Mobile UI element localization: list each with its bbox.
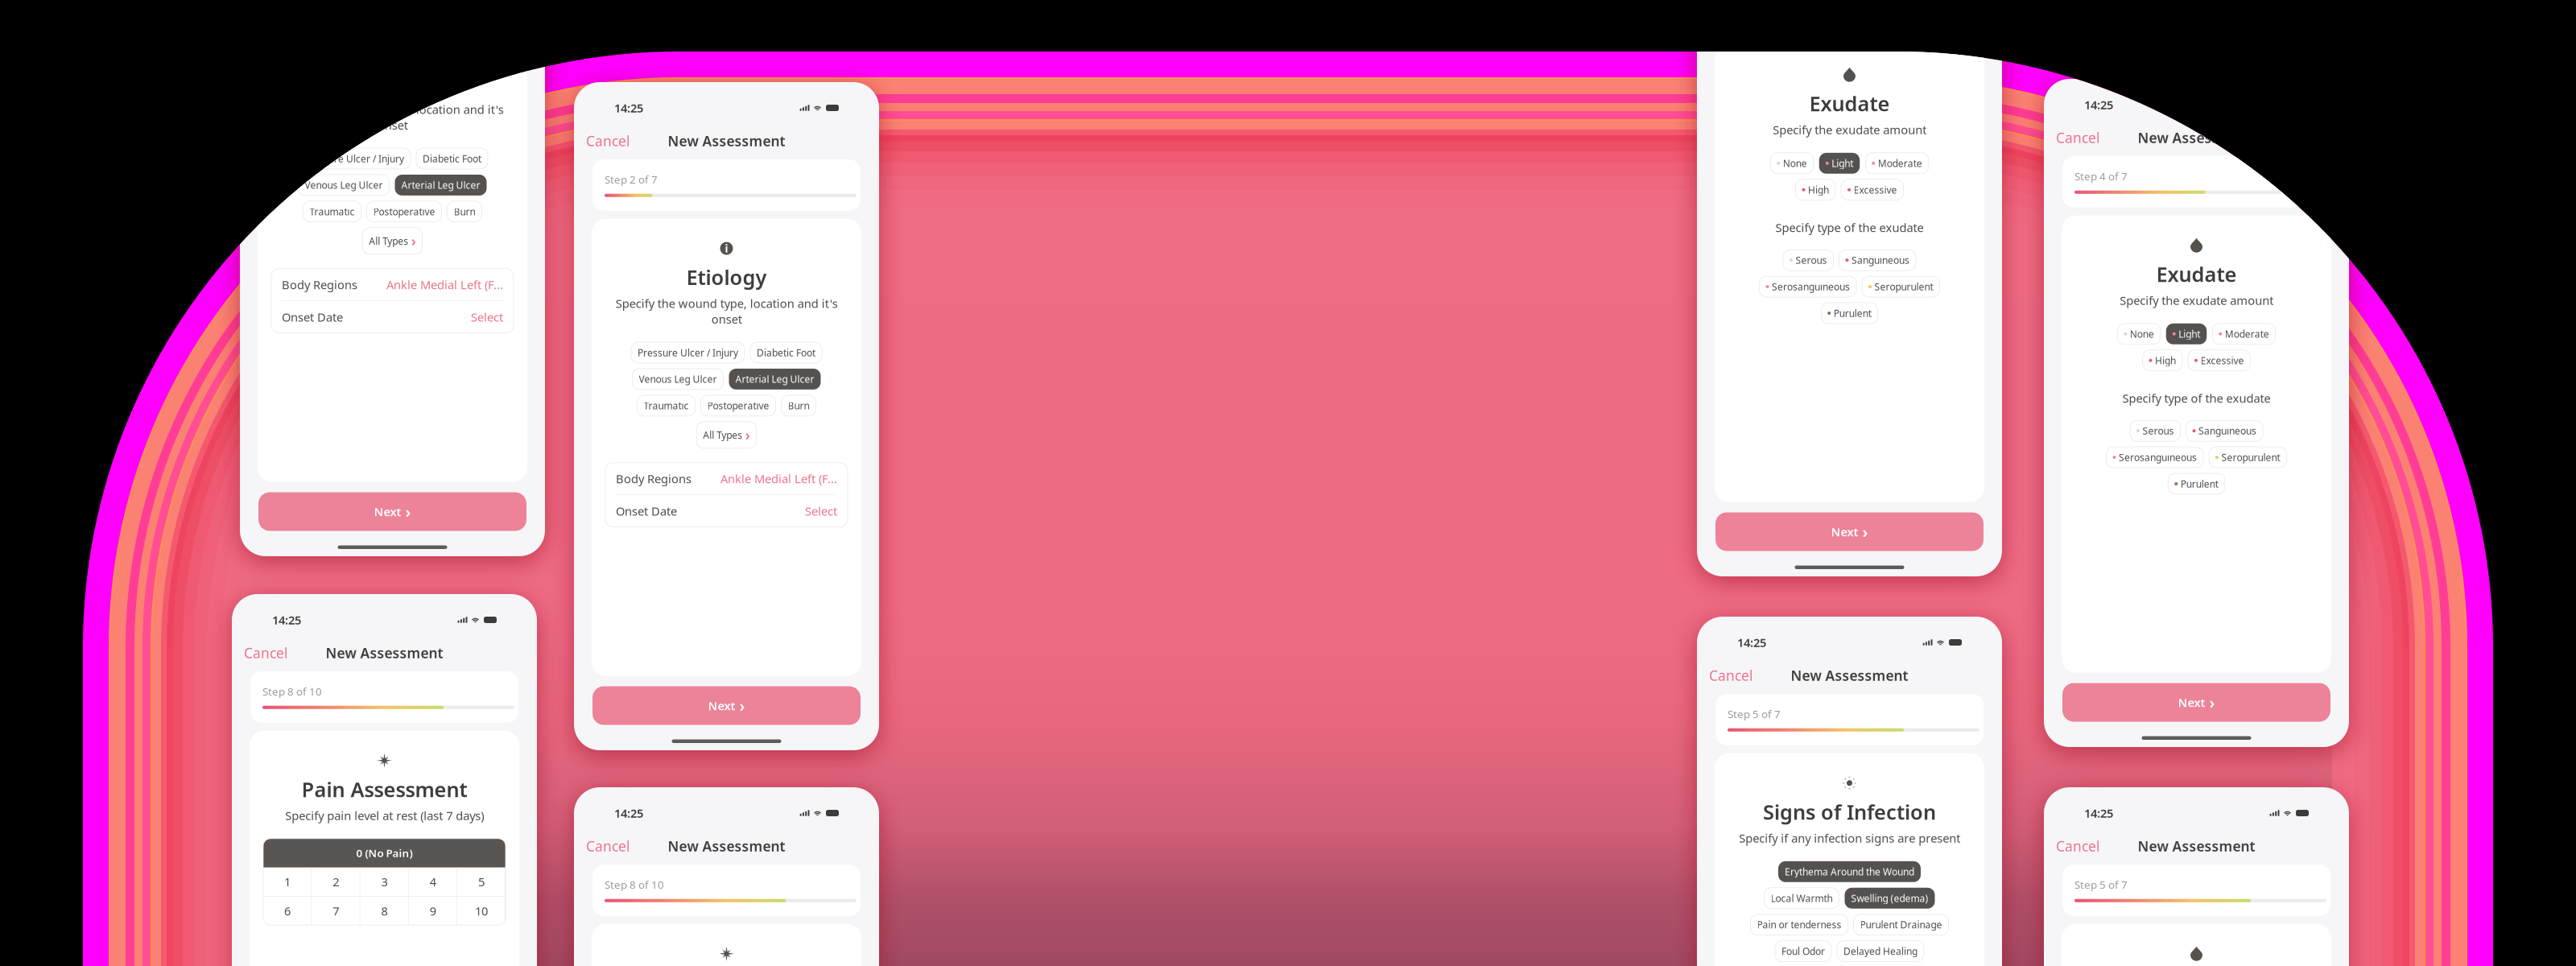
staticText: Pain Assessment	[301, 776, 467, 803]
button[interactable]: Postoperative	[367, 201, 442, 222]
button[interactable]: Next	[2062, 683, 2330, 722]
button[interactable]: Cancel	[2056, 837, 2099, 855]
staticText: ›	[1862, 521, 1868, 542]
staticText: Specify the exudate amount	[1773, 122, 1926, 137]
button[interactable]: High	[1796, 179, 1835, 200]
staticText: Diabetic Foot	[423, 152, 481, 165]
staticText: New Assessment	[668, 132, 785, 150]
staticText: Pressure Ulcer / Injury	[638, 346, 738, 359]
button[interactable]: Cancel	[586, 132, 630, 150]
button[interactable]: Pressure Ulcer / Injury	[297, 148, 411, 169]
staticText: Postoperative	[707, 399, 769, 412]
staticText: Arterial Leg Ulcer	[401, 179, 480, 191]
button[interactable]: Moderate	[1865, 153, 1929, 174]
staticText: Venous Leg Ulcer	[305, 179, 383, 191]
button[interactable]: Excessive	[2188, 350, 2250, 371]
staticText: Onset Date	[616, 503, 677, 519]
staticText: Step 4 of 7	[2074, 169, 2128, 183]
button[interactable]: Traumatic	[637, 395, 695, 416]
staticText: Moderate	[2225, 327, 2269, 340]
staticText: Delayed Healing	[1843, 945, 1918, 958]
button[interactable]: Serosanguineous	[1759, 276, 1856, 297]
button[interactable]: Purulent	[2168, 473, 2225, 494]
button[interactable]: Venous Leg Ulcer	[298, 175, 389, 195]
button[interactable]: Burn	[447, 201, 482, 222]
button[interactable]: Seropurulent	[2209, 447, 2287, 468]
button[interactable]: Serosanguineous	[2106, 447, 2203, 468]
button[interactable]: Arterial Leg Ulcer	[395, 175, 487, 195]
button[interactable]: Sanguineous	[1839, 250, 1916, 271]
staticText: New Assessment	[668, 837, 785, 855]
button[interactable]: Serous	[2130, 420, 2180, 441]
button[interactable]: Cancel	[2056, 128, 2099, 147]
button[interactable]: High	[2143, 350, 2182, 371]
staticText: 14:25	[2084, 805, 2113, 821]
button[interactable]: Swelling (edema)	[1845, 888, 1935, 909]
button[interactable]: Seropurulent	[1862, 276, 1940, 297]
button[interactable]: Erythema Around the Wound	[1778, 861, 1921, 882]
staticText: High	[2155, 354, 2176, 367]
button[interactable]: Cancel	[586, 837, 630, 855]
staticText: Swelling (edema)	[1851, 892, 1928, 905]
staticText: Body Regions	[616, 471, 691, 486]
button[interactable]: Light	[1819, 153, 1860, 174]
button[interactable]: Traumatic	[303, 201, 361, 222]
staticText: Traumatic	[644, 399, 689, 412]
staticText: Exudate	[1809, 90, 1890, 117]
button[interactable]: Cancel	[1709, 666, 1752, 685]
staticText: Pressure Ulcer / Injury	[303, 152, 404, 165]
button[interactable]: Diabetic Foot	[416, 148, 488, 169]
button[interactable]: Venous Leg Ulcer	[632, 369, 723, 389]
staticText: Light	[1832, 157, 1853, 170]
staticText: ›	[2209, 692, 2215, 713]
button[interactable]: Purulent	[1821, 303, 1878, 324]
button[interactable]: Burn	[781, 395, 816, 416]
staticText: Select	[471, 309, 503, 325]
staticText: High	[1808, 183, 1829, 196]
button[interactable]: Arterial Leg Ulcer	[729, 369, 821, 389]
button[interactable]: Pressure Ulcer / Injury	[631, 342, 745, 363]
button[interactable]: None	[2117, 323, 2160, 344]
staticText: Traumatic	[310, 205, 355, 218]
button[interactable]: Next	[258, 492, 526, 531]
staticText: Specify type of the exudate	[2122, 390, 2271, 406]
staticText: Foul Odor	[1781, 945, 1825, 958]
staticText: Signs of Infection	[1763, 798, 1936, 825]
button[interactable]: Postoperative	[701, 395, 776, 416]
button[interactable]: Sanguineous	[2186, 420, 2263, 441]
staticText: Seropurulent	[1874, 280, 1933, 293]
staticText: Excessive	[2200, 354, 2244, 367]
button[interactable]: Moderate	[2212, 323, 2275, 344]
button[interactable]: Cancel	[244, 644, 287, 662]
staticText: Serosanguineous	[2119, 451, 2197, 464]
staticText: Step 8 of 10	[605, 877, 664, 892]
staticText: Specify the wound type, location and it'…	[281, 102, 504, 133]
staticText: Specify type of the exudate	[1775, 220, 1924, 235]
staticText: Next	[374, 504, 401, 519]
staticText: Ankle Medial Left (F...	[386, 277, 503, 292]
staticText: Next	[2178, 695, 2205, 710]
button[interactable]: Pain or tenderness	[1750, 914, 1848, 935]
button[interactable]: Purulent Drainage	[1854, 914, 1949, 935]
button[interactable]: All Types	[696, 422, 756, 448]
staticText: ›	[739, 695, 745, 716]
button[interactable]: Next	[1715, 512, 1984, 551]
button[interactable]: None	[1770, 153, 1813, 174]
button[interactable]: Serous	[1783, 250, 1833, 271]
staticText: 10	[475, 903, 488, 919]
button[interactable]: Excessive	[1841, 179, 1903, 200]
staticText: All Types	[703, 429, 742, 441]
button[interactable]: Foul Odor	[1775, 941, 1831, 962]
staticText: 14:25	[2084, 97, 2113, 113]
staticText: Erythema Around the Wound	[1785, 865, 1914, 878]
button[interactable]: Light	[2166, 323, 2207, 344]
button[interactable]: Delayed Healing	[1837, 941, 1924, 962]
button[interactable]: Diabetic Foot	[750, 342, 822, 363]
staticText: Purulent	[1834, 307, 1871, 320]
button[interactable]: Next	[592, 686, 861, 725]
button[interactable]: All Types	[362, 228, 422, 254]
staticText: Seropurulent	[2221, 451, 2280, 464]
button[interactable]: Local Warmth	[1764, 888, 1839, 909]
